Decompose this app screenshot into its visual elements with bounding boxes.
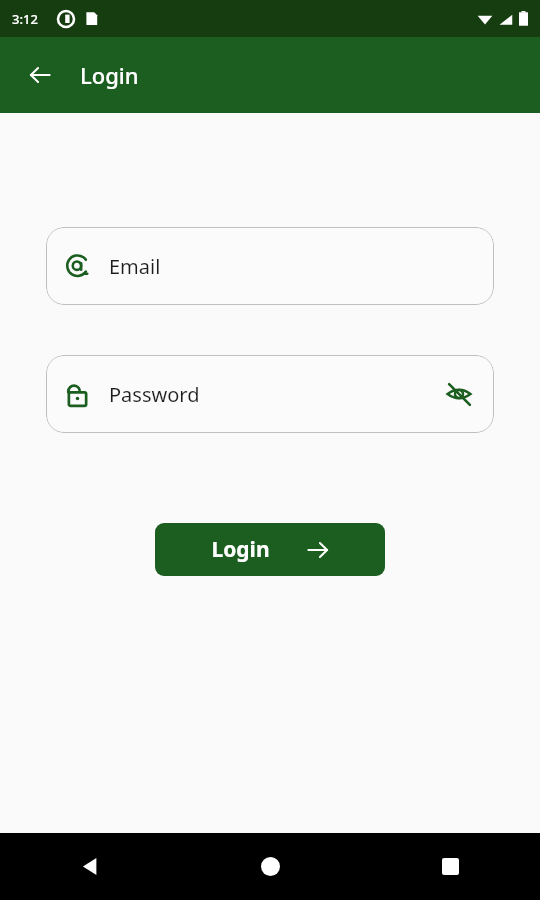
button[interactable]: Password: [46, 355, 494, 433]
button[interactable]: Recent apps: [360, 833, 540, 900]
button[interactable]: Email: [46, 227, 494, 305]
staticText: Login: [211, 535, 270, 564]
button[interactable]: Login: [155, 523, 385, 576]
staticText: 3:12: [12, 10, 38, 28]
staticText: Login: [80, 60, 139, 90]
staticText: Password: [109, 381, 442, 408]
button[interactable]: Show password: [442, 377, 476, 411]
button[interactable]: Home: [180, 833, 360, 900]
staticText: Email: [109, 253, 476, 280]
button[interactable]: Back: [16, 51, 64, 99]
button[interactable]: Back: [0, 833, 180, 900]
